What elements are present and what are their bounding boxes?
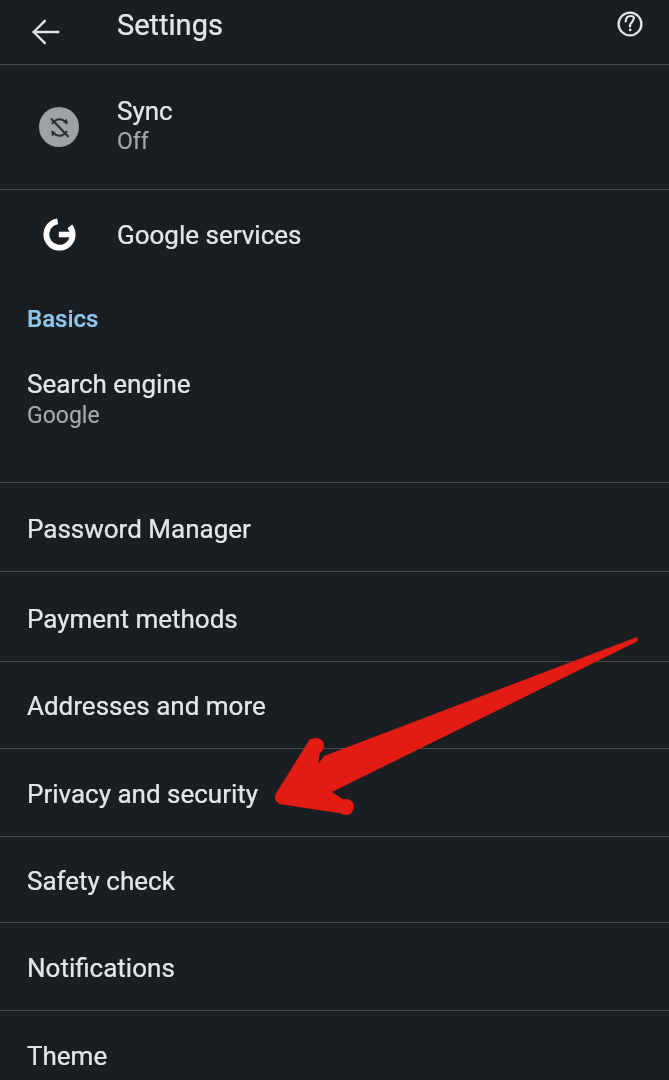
button[interactable]: Sync <box>0 65 669 189</box>
button[interactable]: Search engine <box>0 345 669 482</box>
staticText: Safety check <box>27 866 175 896</box>
button[interactable]: Navigate up <box>22 0 70 64</box>
staticText: Notifications <box>27 953 175 983</box>
staticText: Google services <box>117 220 302 250</box>
staticText: Theme <box>27 1041 108 1071</box>
staticText: Search engine <box>27 369 191 399</box>
staticText: Sync <box>117 96 173 126</box>
button[interactable]: Google services <box>0 190 669 278</box>
button[interactable]: Theme <box>0 1011 669 1080</box>
staticText: Payment methods <box>27 604 238 634</box>
staticText: Password Manager <box>27 514 251 544</box>
staticText: Google <box>27 402 100 429</box>
staticText: Privacy and security <box>27 779 259 809</box>
button[interactable]: Notifications <box>0 923 669 1010</box>
button[interactable]: Help and feedback <box>606 0 654 48</box>
button[interactable]: Addresses and more <box>0 662 669 748</box>
button[interactable]: Payment methods <box>0 572 669 661</box>
button[interactable]: Privacy and security <box>0 749 669 836</box>
staticText: Settings <box>117 8 223 42</box>
button[interactable]: Password Manager <box>0 483 669 571</box>
staticText: Off <box>117 128 149 155</box>
staticText: Basics <box>27 305 99 333</box>
staticText: Addresses and more <box>27 691 266 721</box>
button[interactable]: Safety check <box>0 837 669 922</box>
